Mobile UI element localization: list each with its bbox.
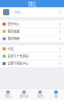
button[interactable]: 微信 [0,90,16,98]
staticText: 状态 [15,10,21,14]
staticText: 我 [54,94,57,98]
button[interactable]: 设置与隐私中心 [0,60,64,67]
staticText: 通讯录 [19,94,28,98]
button[interactable]: 我的收藏 [0,28,64,35]
staticText: 我的收藏 [7,29,19,33]
staticText: 我的相册 [7,37,19,41]
staticText: 设置与隐私中心 [7,61,28,66]
button[interactable]: 发现 [32,90,48,98]
button[interactable]: 我的相册 [0,35,64,42]
staticText: 表情与个性装扮 [7,54,28,58]
staticText: 支付中心 [7,22,19,26]
staticText: 微信 [5,94,11,98]
staticText: 微信 [28,1,36,7]
button[interactable]: 卡包 [0,45,64,52]
button[interactable]: 我 [48,90,64,98]
button[interactable]: 表情与个性装扮 [0,53,64,60]
staticText: 卡包 [7,47,13,51]
button[interactable]: 通讯录 [16,90,32,98]
button[interactable]: 支付中心 [0,20,64,28]
staticText: 发现 [37,94,43,98]
button[interactable]: 状态 [0,7,64,17]
